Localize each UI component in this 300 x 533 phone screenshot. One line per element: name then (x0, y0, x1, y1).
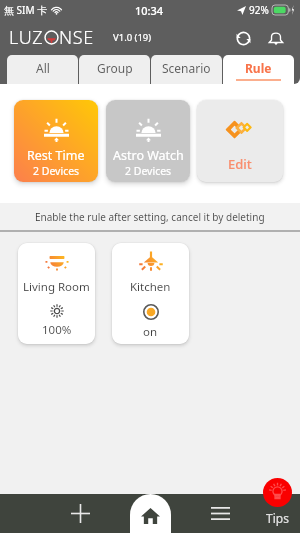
staticText: Kitchen (130, 279, 171, 295)
staticText: Living Room (23, 279, 90, 295)
button[interactable]: Living Room (18, 243, 95, 344)
button[interactable]: Astro Watch (106, 100, 190, 182)
button[interactable]: Edit (197, 100, 283, 182)
staticText: Scenario (162, 60, 211, 76)
staticText: Rest Time (27, 147, 85, 164)
button[interactable]: Refresh (230, 25, 256, 51)
staticText: V1.0 (19) (113, 31, 152, 44)
button[interactable]: Menu (190, 494, 250, 533)
staticText: Group (97, 60, 133, 76)
staticText: 100% (42, 322, 72, 338)
staticText: 2 Devices (33, 164, 80, 178)
staticText: Astro Watch (113, 147, 184, 164)
button[interactable]: Group (79, 55, 150, 84)
staticText: Edit (228, 155, 252, 173)
button[interactable]: Tips (252, 494, 300, 533)
staticText: 2 Devices (125, 164, 172, 178)
staticText: 10:34 (135, 3, 164, 18)
button[interactable]: Tips (263, 478, 292, 507)
staticText: LUZ (9, 25, 44, 50)
button[interactable]: Add (50, 494, 110, 533)
staticText: 無 SIM 卡 (4, 3, 48, 17)
staticText: on (143, 324, 158, 340)
staticText: Rule (245, 60, 272, 76)
button[interactable]: All (7, 55, 78, 84)
button[interactable]: Kitchen (112, 243, 189, 344)
staticText: 92% (249, 3, 269, 17)
button[interactable]: Scenario (151, 55, 222, 84)
staticText: All (36, 60, 50, 76)
button[interactable]: Rest Time (14, 100, 98, 182)
staticText: Enable the rule after setting, cancel it… (35, 210, 265, 224)
staticText: Tips (266, 510, 289, 526)
button[interactable]: Notifications (263, 25, 289, 51)
button[interactable]: Home (130, 494, 171, 533)
button[interactable]: Rule (223, 55, 294, 84)
staticText: NSE (59, 25, 94, 50)
